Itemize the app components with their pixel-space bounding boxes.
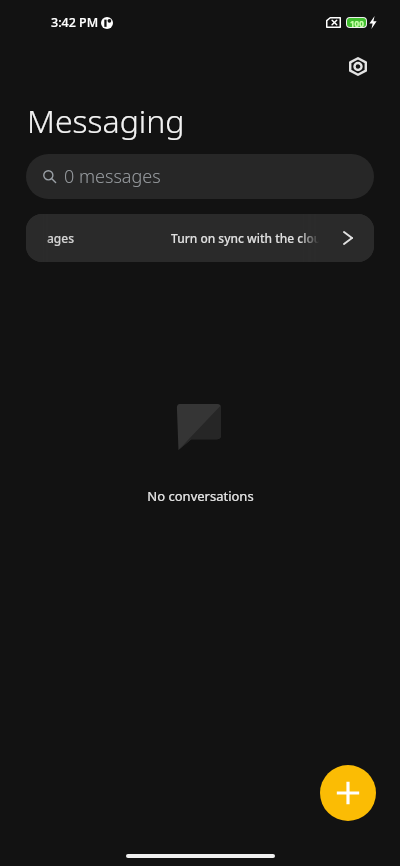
button[interactable]: 0 messages [26,154,374,199]
button[interactable]: ages [26,214,374,262]
button[interactable]: Start new conversation [320,765,376,821]
staticText: 100 [350,18,364,27]
staticText: Messaging [27,99,185,143]
staticText: 3:42 PM [51,14,99,31]
staticText: No conversations [147,487,254,505]
staticText: 0 messages [64,164,161,189]
staticText: Turn on sync with the cloud [171,230,329,246]
staticText: ages [47,230,75,246]
button[interactable]: Settings [338,46,378,86]
